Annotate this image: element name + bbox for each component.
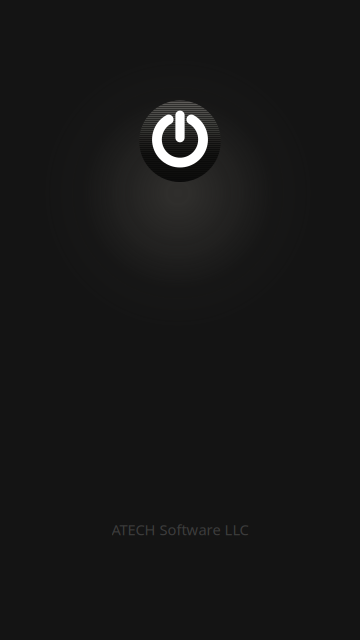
staticText: ATECH Software LLC [111, 520, 248, 539]
button[interactable]: Power [139, 100, 221, 182]
